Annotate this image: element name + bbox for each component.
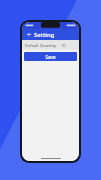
staticText: Default Quantity [25,43,57,48]
button[interactable]: Save [24,52,77,61]
staticText: 10 [61,43,66,48]
staticText: Save [45,54,56,60]
button[interactable]: Back [24,30,33,39]
staticText: Setting [34,31,55,39]
button[interactable]: Default Quantity [22,40,79,50]
